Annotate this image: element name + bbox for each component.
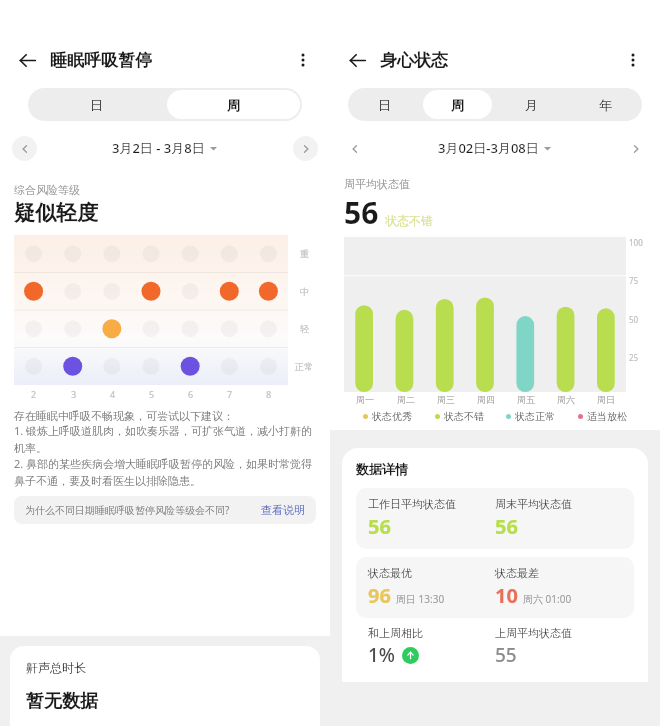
staticText: 8 (266, 388, 272, 400)
staticText: 1. 锻炼上呼吸道肌肉，如吹奏乐器，可扩张气道，减小打鼾的机率。 (14, 423, 316, 456)
staticText: 56 (344, 192, 379, 233)
staticText: 鼾声总时长 (26, 660, 86, 675)
staticText: 状态正常 (515, 410, 555, 423)
staticText: 睡眠呼吸暂停 (50, 50, 152, 71)
staticText: 周三 (437, 394, 455, 405)
staticText: 状态不错 (385, 213, 433, 228)
button[interactable]: 日 (30, 90, 163, 119)
staticText: 55 (495, 642, 517, 668)
staticText: 状态不错 (444, 410, 484, 423)
staticText: 25 (629, 352, 639, 363)
staticText: 周五 (517, 394, 535, 405)
staticText: 周六 (557, 394, 575, 405)
staticText: 适当放松 (587, 410, 627, 423)
staticText: 3 (71, 388, 77, 400)
button[interactable]: 状态不错 (435, 410, 484, 423)
staticText: 重 (300, 248, 309, 259)
staticText: 50 (629, 314, 639, 325)
staticText: 轻 (300, 323, 309, 334)
button[interactable]: Next (623, 136, 648, 161)
staticText: 状态最优 (368, 566, 412, 580)
button[interactable]: 和上周相比 (356, 626, 634, 668)
button[interactable]: 状态正常 (506, 410, 555, 423)
staticText: 日 (90, 97, 103, 113)
staticText: 身心状态 (380, 50, 448, 71)
staticText: 1% (368, 642, 396, 668)
staticText: 状态最差 (495, 566, 539, 580)
button[interactable]: 鼾声总时长 (10, 646, 320, 726)
staticText: 周日 13:30 (396, 592, 445, 606)
staticText: 周平均状态值 (344, 177, 410, 191)
staticText: 数据详情 (356, 461, 408, 477)
button[interactable]: 周 (167, 90, 300, 119)
button[interactable]: 为什么不同日期睡眠呼吸暂停风险等级会不同? (14, 496, 316, 524)
button[interactable]: 3月2日 - 3月8日 (112, 139, 217, 157)
staticText: 中 (300, 286, 309, 297)
staticText: 年 (599, 97, 612, 113)
staticText: 2 (31, 388, 37, 400)
button[interactable]: 状态最优 (356, 557, 634, 618)
staticText: 周四 (477, 394, 495, 405)
staticText: 3月2日 - 3月8日 (112, 139, 205, 157)
staticText: 6 (188, 388, 194, 400)
staticText: 10 (495, 582, 518, 609)
staticText: 周 (451, 97, 464, 113)
staticText: 综合风险等级 (14, 183, 80, 197)
button[interactable]: Previous (12, 136, 37, 161)
staticText: 月 (525, 97, 538, 113)
staticText: 周日 (597, 394, 615, 405)
button[interactable]: 年 (570, 90, 640, 119)
button[interactable]: Previous (342, 136, 367, 161)
staticText: 7 (227, 388, 233, 400)
button[interactable]: 日 (350, 90, 419, 119)
button[interactable]: Back (12, 45, 42, 75)
staticText: 疑似轻度 (14, 200, 98, 226)
button[interactable]: 适当放松 (578, 410, 627, 423)
staticText: 上周平均状态值 (495, 626, 572, 640)
staticText: 56 (495, 513, 518, 540)
staticText: 2. 鼻部的某些疾病会增大睡眠呼吸暂停的风险，如果时常觉得鼻子不通，要及时看医生… (14, 456, 316, 489)
button[interactable]: Next (293, 136, 318, 161)
staticText: 正常 (295, 361, 313, 372)
staticText: 周 (227, 97, 240, 113)
button[interactable]: 状态优秀 (363, 410, 412, 423)
staticText: 4 (110, 388, 116, 400)
button[interactable]: More options (288, 45, 318, 75)
staticText: 100 (629, 237, 643, 248)
staticText: 3月02日-3月08日 (438, 139, 539, 157)
staticText: 周一 (356, 394, 374, 405)
button[interactable]: Back (342, 45, 372, 75)
button[interactable]: 工作日平均状态值 (356, 488, 634, 549)
button[interactable]: More options (618, 45, 648, 75)
staticText: 56 (368, 513, 391, 540)
staticText: 周二 (397, 394, 415, 405)
button[interactable]: 3月02日-3月08日 (438, 139, 551, 157)
staticText: 周末平均状态值 (495, 497, 572, 511)
staticText: 75 (629, 275, 639, 286)
staticText: 和上周相比 (368, 626, 423, 640)
staticText: 暂无数据 (26, 690, 98, 713)
staticText: 为什么不同日期睡眠呼吸暂停风险等级会不同? (25, 503, 261, 517)
button[interactable]: 月 (496, 90, 566, 119)
button[interactable]: 周 (423, 90, 492, 119)
staticText: 5 (149, 388, 155, 400)
staticText: 工作日平均状态值 (368, 497, 456, 511)
staticText: 存在睡眠中呼吸不畅现象，可尝试以下建议： (14, 409, 234, 423)
staticText: 周六 01:00 (523, 592, 572, 606)
staticText: 查看说明 (261, 503, 305, 517)
staticText: 日 (378, 97, 391, 113)
staticText: 状态优秀 (372, 410, 412, 423)
staticText: 96 (368, 582, 391, 609)
